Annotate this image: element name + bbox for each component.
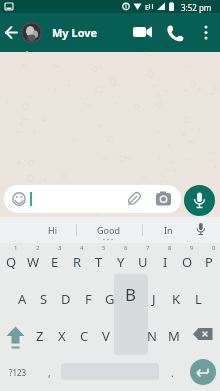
button[interactable] — [188, 317, 218, 354]
staticText: G — [105, 290, 115, 308]
button[interactable]: Y — [110, 243, 132, 280]
button[interactable]: T — [88, 243, 110, 280]
staticText: . — [171, 366, 174, 380]
staticText: Good — [97, 224, 120, 236]
button[interactable]: C — [73, 317, 95, 354]
staticText: L — [195, 290, 202, 308]
staticText: S — [40, 290, 48, 308]
button[interactable]: O — [176, 243, 198, 280]
staticText: 5 — [102, 244, 106, 252]
staticText: In — [164, 224, 173, 236]
staticText: 4 — [80, 244, 84, 252]
button[interactable] — [184, 185, 215, 216]
staticText: O — [182, 253, 193, 271]
button[interactable]: . — [164, 354, 180, 391]
staticText: B — [125, 283, 137, 306]
button[interactable]: J — [143, 280, 165, 317]
staticText: , — [48, 366, 51, 380]
button[interactable]: P — [198, 243, 220, 280]
staticText: ?123 — [9, 367, 27, 378]
staticText: R — [73, 253, 82, 271]
staticText: M — [168, 327, 180, 345]
staticText: U — [138, 253, 148, 271]
staticText: E — [51, 253, 59, 271]
button[interactable] — [4, 185, 181, 213]
button[interactable]: F — [77, 280, 99, 317]
staticText: 2 — [36, 244, 40, 252]
button[interactable]: L — [187, 280, 209, 317]
staticText: T — [95, 253, 103, 271]
staticText: C — [80, 327, 89, 345]
staticText: 8 — [168, 244, 172, 252]
staticText: F — [85, 290, 92, 308]
staticText: I — [163, 253, 168, 271]
button[interactable] — [2, 323, 30, 354]
button[interactable]: M — [163, 317, 185, 354]
staticText: 1 — [14, 244, 18, 252]
button[interactable]: My Love — [52, 25, 98, 40]
staticText: 9 — [190, 244, 194, 252]
staticText: H — [127, 290, 137, 308]
button[interactable]: I — [154, 243, 176, 280]
staticText: Y — [117, 253, 125, 271]
button[interactable]: X — [51, 317, 73, 354]
staticText: Q — [6, 253, 17, 271]
button[interactable]: N — [141, 317, 163, 354]
staticText: 3 — [58, 244, 62, 252]
staticText: N — [147, 327, 157, 345]
staticText: 3:52 pm — [181, 2, 212, 13]
button[interactable]: In — [146, 217, 190, 243]
button[interactable]: Good — [80, 217, 136, 243]
button[interactable] — [196, 20, 216, 45]
staticText: 7 — [146, 244, 150, 252]
staticText: P — [205, 253, 213, 271]
staticText: 0 — [212, 244, 216, 252]
button[interactable]: V — [95, 317, 117, 354]
button[interactable]: R — [66, 243, 88, 280]
button[interactable] — [128, 20, 156, 45]
button[interactable]: D — [55, 280, 77, 317]
button[interactable]: E — [44, 243, 66, 280]
button[interactable]: , — [39, 354, 59, 391]
button[interactable]: ?123 — [2, 354, 34, 391]
button[interactable]: A — [11, 280, 33, 317]
staticText: K — [172, 290, 181, 308]
button[interactable]: K — [165, 280, 187, 317]
staticText: D — [61, 290, 71, 308]
staticText: V — [102, 327, 110, 345]
staticText: 6 — [124, 244, 128, 252]
staticText: Hi — [48, 224, 57, 236]
button[interactable] — [0, 13, 46, 52]
staticText: X — [58, 327, 66, 345]
button[interactable]: H — [121, 280, 143, 317]
button[interactable] — [162, 20, 188, 45]
staticText: Z — [36, 327, 44, 345]
button[interactable]: Q — [0, 243, 22, 280]
button[interactable]: U — [132, 243, 154, 280]
staticText: J — [152, 290, 156, 308]
button[interactable]: W — [22, 243, 44, 280]
staticText: A — [18, 290, 27, 308]
button[interactable]: Z — [29, 317, 51, 354]
staticText: W — [27, 253, 40, 271]
button[interactable]: Hi — [30, 217, 75, 243]
staticText: E — [145, 3, 149, 13]
button[interactable]: S — [33, 280, 55, 317]
button[interactable]: G — [99, 280, 121, 317]
button[interactable] — [190, 359, 216, 385]
